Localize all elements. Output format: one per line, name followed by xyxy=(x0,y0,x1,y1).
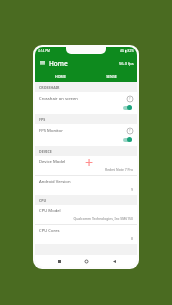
staticText: 56.0 fps xyxy=(119,61,134,66)
button[interactable]: Toggle FPS Monitor xyxy=(122,136,133,143)
button[interactable]: FPS Monitor xyxy=(35,124,137,146)
staticText: SENSE xyxy=(106,74,117,79)
button[interactable]: Device Model xyxy=(35,156,137,175)
button[interactable]: CPU Cores xyxy=(35,225,137,244)
button[interactable]: Toggle Crosshair on screen xyxy=(122,104,133,111)
staticText: Redmi Note 7 Pro xyxy=(105,167,133,172)
staticText: ? xyxy=(129,129,131,133)
button[interactable]: Home xyxy=(82,257,90,265)
button[interactable]: Android Version xyxy=(35,176,137,195)
button[interactable]: HOME xyxy=(35,71,86,82)
staticText: FPS xyxy=(39,117,46,122)
staticText: ? xyxy=(129,97,131,101)
button[interactable]: Help about Crosshair on screen xyxy=(126,95,133,102)
staticText: Device Model xyxy=(39,159,66,165)
staticText: HOME xyxy=(55,74,66,79)
staticText: 9 xyxy=(131,187,133,192)
staticText: Crosshair on screen xyxy=(39,96,78,102)
staticText: CROSSHAIR xyxy=(39,85,60,90)
staticText: DEVICE xyxy=(39,149,52,154)
button[interactable]: CPU Model xyxy=(35,205,137,224)
staticText: Android Version xyxy=(39,179,71,185)
staticText: CPU Model xyxy=(39,208,61,214)
staticText: 4G ▮ 82% xyxy=(120,49,134,53)
button[interactable]: Back xyxy=(110,257,118,265)
button[interactable]: Crosshair on screen xyxy=(35,92,137,114)
staticText: 8 xyxy=(131,236,133,241)
staticText: Home xyxy=(49,59,68,68)
button[interactable]: Recent apps xyxy=(55,257,63,265)
button[interactable]: Help about FPS Monitor xyxy=(126,127,133,134)
staticText: FPS Monitor xyxy=(39,128,63,134)
button[interactable]: SENSE xyxy=(86,71,137,82)
staticText: 4:14 PM xyxy=(38,49,50,53)
button[interactable]: Open navigation menu xyxy=(38,59,47,68)
staticText: CPU xyxy=(39,198,47,203)
staticText: CPU Cores xyxy=(39,228,60,234)
staticText: Qualcomm Technologies, Inc SM6150 xyxy=(73,216,133,221)
